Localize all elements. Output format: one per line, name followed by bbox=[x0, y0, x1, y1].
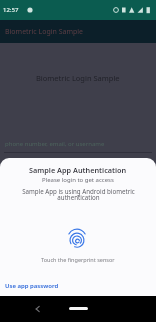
staticText: Biometric Login Sample bbox=[5, 27, 84, 37]
staticText: phone number, email, or username bbox=[5, 140, 105, 148]
staticText: Sample App is using Android biometric au… bbox=[22, 187, 135, 202]
button[interactable]: Use app password bbox=[1, 278, 63, 294]
staticText: Please login to get access bbox=[42, 176, 114, 184]
staticText: Sample App Authentication bbox=[29, 165, 127, 175]
staticText: Touch the fingerprint sensor bbox=[41, 256, 115, 263]
staticText: Use app password bbox=[5, 282, 59, 290]
staticText: Biometric Login Sample bbox=[36, 73, 120, 83]
staticText: 12:57 bbox=[3, 6, 19, 14]
button[interactable] bbox=[69, 307, 88, 310]
